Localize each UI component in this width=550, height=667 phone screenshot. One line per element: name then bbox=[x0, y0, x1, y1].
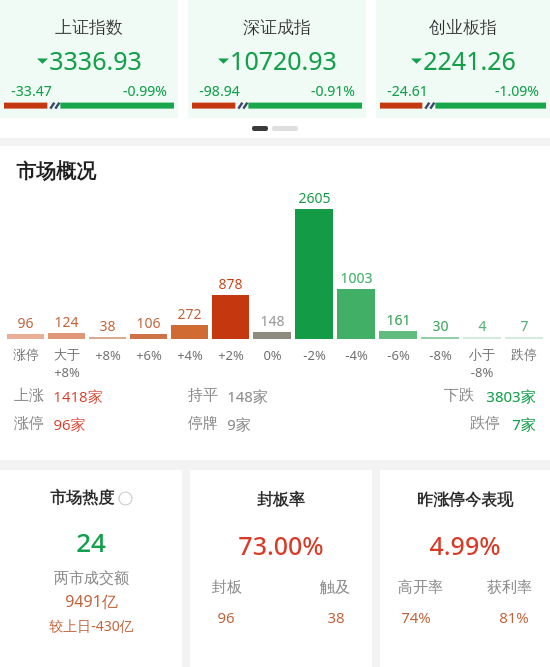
staticText: 106 bbox=[136, 313, 161, 332]
staticText: 跌停 bbox=[511, 346, 537, 362]
staticText: 0% bbox=[263, 346, 282, 364]
staticText: +2% bbox=[218, 346, 244, 364]
staticText: 9491亿 bbox=[65, 590, 118, 612]
staticText: 创业板指 bbox=[429, 17, 497, 38]
staticText: 持平 bbox=[188, 386, 218, 405]
staticText: 停牌 bbox=[188, 414, 218, 433]
staticText: 小于 -8% bbox=[469, 346, 495, 380]
staticText: 昨涨停今表现 bbox=[417, 490, 513, 510]
staticText: 大于 +8% bbox=[54, 346, 80, 380]
staticText: 24 bbox=[76, 524, 106, 559]
button[interactable]: 市场热度 bbox=[0, 470, 182, 667]
staticText: -4% bbox=[345, 346, 368, 364]
staticText: 4.99% bbox=[429, 528, 501, 562]
staticText: -0.99% bbox=[123, 81, 167, 100]
staticText: -1.09% bbox=[495, 81, 539, 100]
staticText: 涨停 bbox=[14, 414, 44, 433]
staticText: 两市成交额 bbox=[54, 569, 129, 588]
staticText: -24.61 bbox=[387, 81, 428, 100]
staticText: 7家 bbox=[512, 414, 536, 434]
staticText: 38 bbox=[327, 607, 345, 627]
staticText: +4% bbox=[177, 346, 203, 364]
staticText: 较上日-430亿 bbox=[49, 616, 134, 635]
staticText: 96家 bbox=[53, 414, 86, 434]
staticText: 1418家 bbox=[53, 386, 103, 406]
staticText: 124 bbox=[54, 312, 79, 331]
staticText: 74% bbox=[401, 607, 431, 627]
staticText: 3336.93 bbox=[49, 43, 142, 77]
staticText: 下跌 bbox=[444, 386, 474, 405]
staticText: -8% bbox=[429, 346, 452, 364]
staticText: 1003 bbox=[340, 268, 373, 287]
staticText: 上证指数 bbox=[55, 17, 123, 38]
staticText: 触及 bbox=[320, 578, 350, 597]
button[interactable]: 上证指数 bbox=[0, 0, 178, 118]
staticText: 148 bbox=[260, 311, 285, 330]
staticText: -0.91% bbox=[311, 81, 355, 100]
staticText: 7 bbox=[520, 316, 529, 335]
staticText: 2605 bbox=[298, 188, 331, 207]
button[interactable]: 封板率 bbox=[190, 470, 372, 667]
staticText: -6% bbox=[387, 346, 410, 364]
other: 帮助 bbox=[119, 492, 132, 505]
staticText: -2% bbox=[303, 346, 326, 364]
staticText: 148家 bbox=[227, 386, 268, 406]
staticText: +8% bbox=[95, 346, 121, 364]
staticText: 封板率 bbox=[257, 490, 305, 510]
staticText: 81% bbox=[499, 607, 529, 627]
staticText: 4 bbox=[478, 316, 487, 335]
staticText: 2241.26 bbox=[423, 43, 516, 77]
button[interactable]: 创业板指 bbox=[376, 0, 550, 118]
staticText: 高开率 bbox=[398, 578, 443, 597]
staticText: 市场热度 bbox=[50, 488, 114, 508]
staticText: 10720.93 bbox=[230, 43, 337, 77]
staticText: 跌停 bbox=[470, 414, 500, 433]
staticText: 96 bbox=[217, 607, 235, 627]
staticText: 272 bbox=[177, 304, 202, 323]
staticText: 市场概况 bbox=[16, 159, 96, 184]
button[interactable]: 昨涨停今表现 bbox=[380, 470, 550, 667]
staticText: 878 bbox=[218, 274, 243, 293]
staticText: 获利率 bbox=[487, 578, 532, 597]
staticText: 封板 bbox=[212, 578, 242, 597]
staticText: -33.47 bbox=[11, 81, 52, 100]
staticText: 3803家 bbox=[486, 386, 536, 406]
staticText: 161 bbox=[386, 310, 411, 329]
staticText: 涨停 bbox=[13, 346, 39, 362]
staticText: 9家 bbox=[227, 414, 251, 434]
staticText: 深证成指 bbox=[243, 17, 311, 38]
staticText: 96 bbox=[17, 313, 34, 332]
staticText: 上涨 bbox=[14, 386, 44, 405]
staticText: -98.94 bbox=[199, 81, 240, 100]
staticText: +6% bbox=[136, 346, 162, 364]
staticText: 73.00% bbox=[238, 528, 324, 562]
staticText: 30 bbox=[432, 316, 449, 335]
staticText: 38 bbox=[99, 316, 116, 335]
button[interactable]: 深证成指 bbox=[188, 0, 366, 118]
